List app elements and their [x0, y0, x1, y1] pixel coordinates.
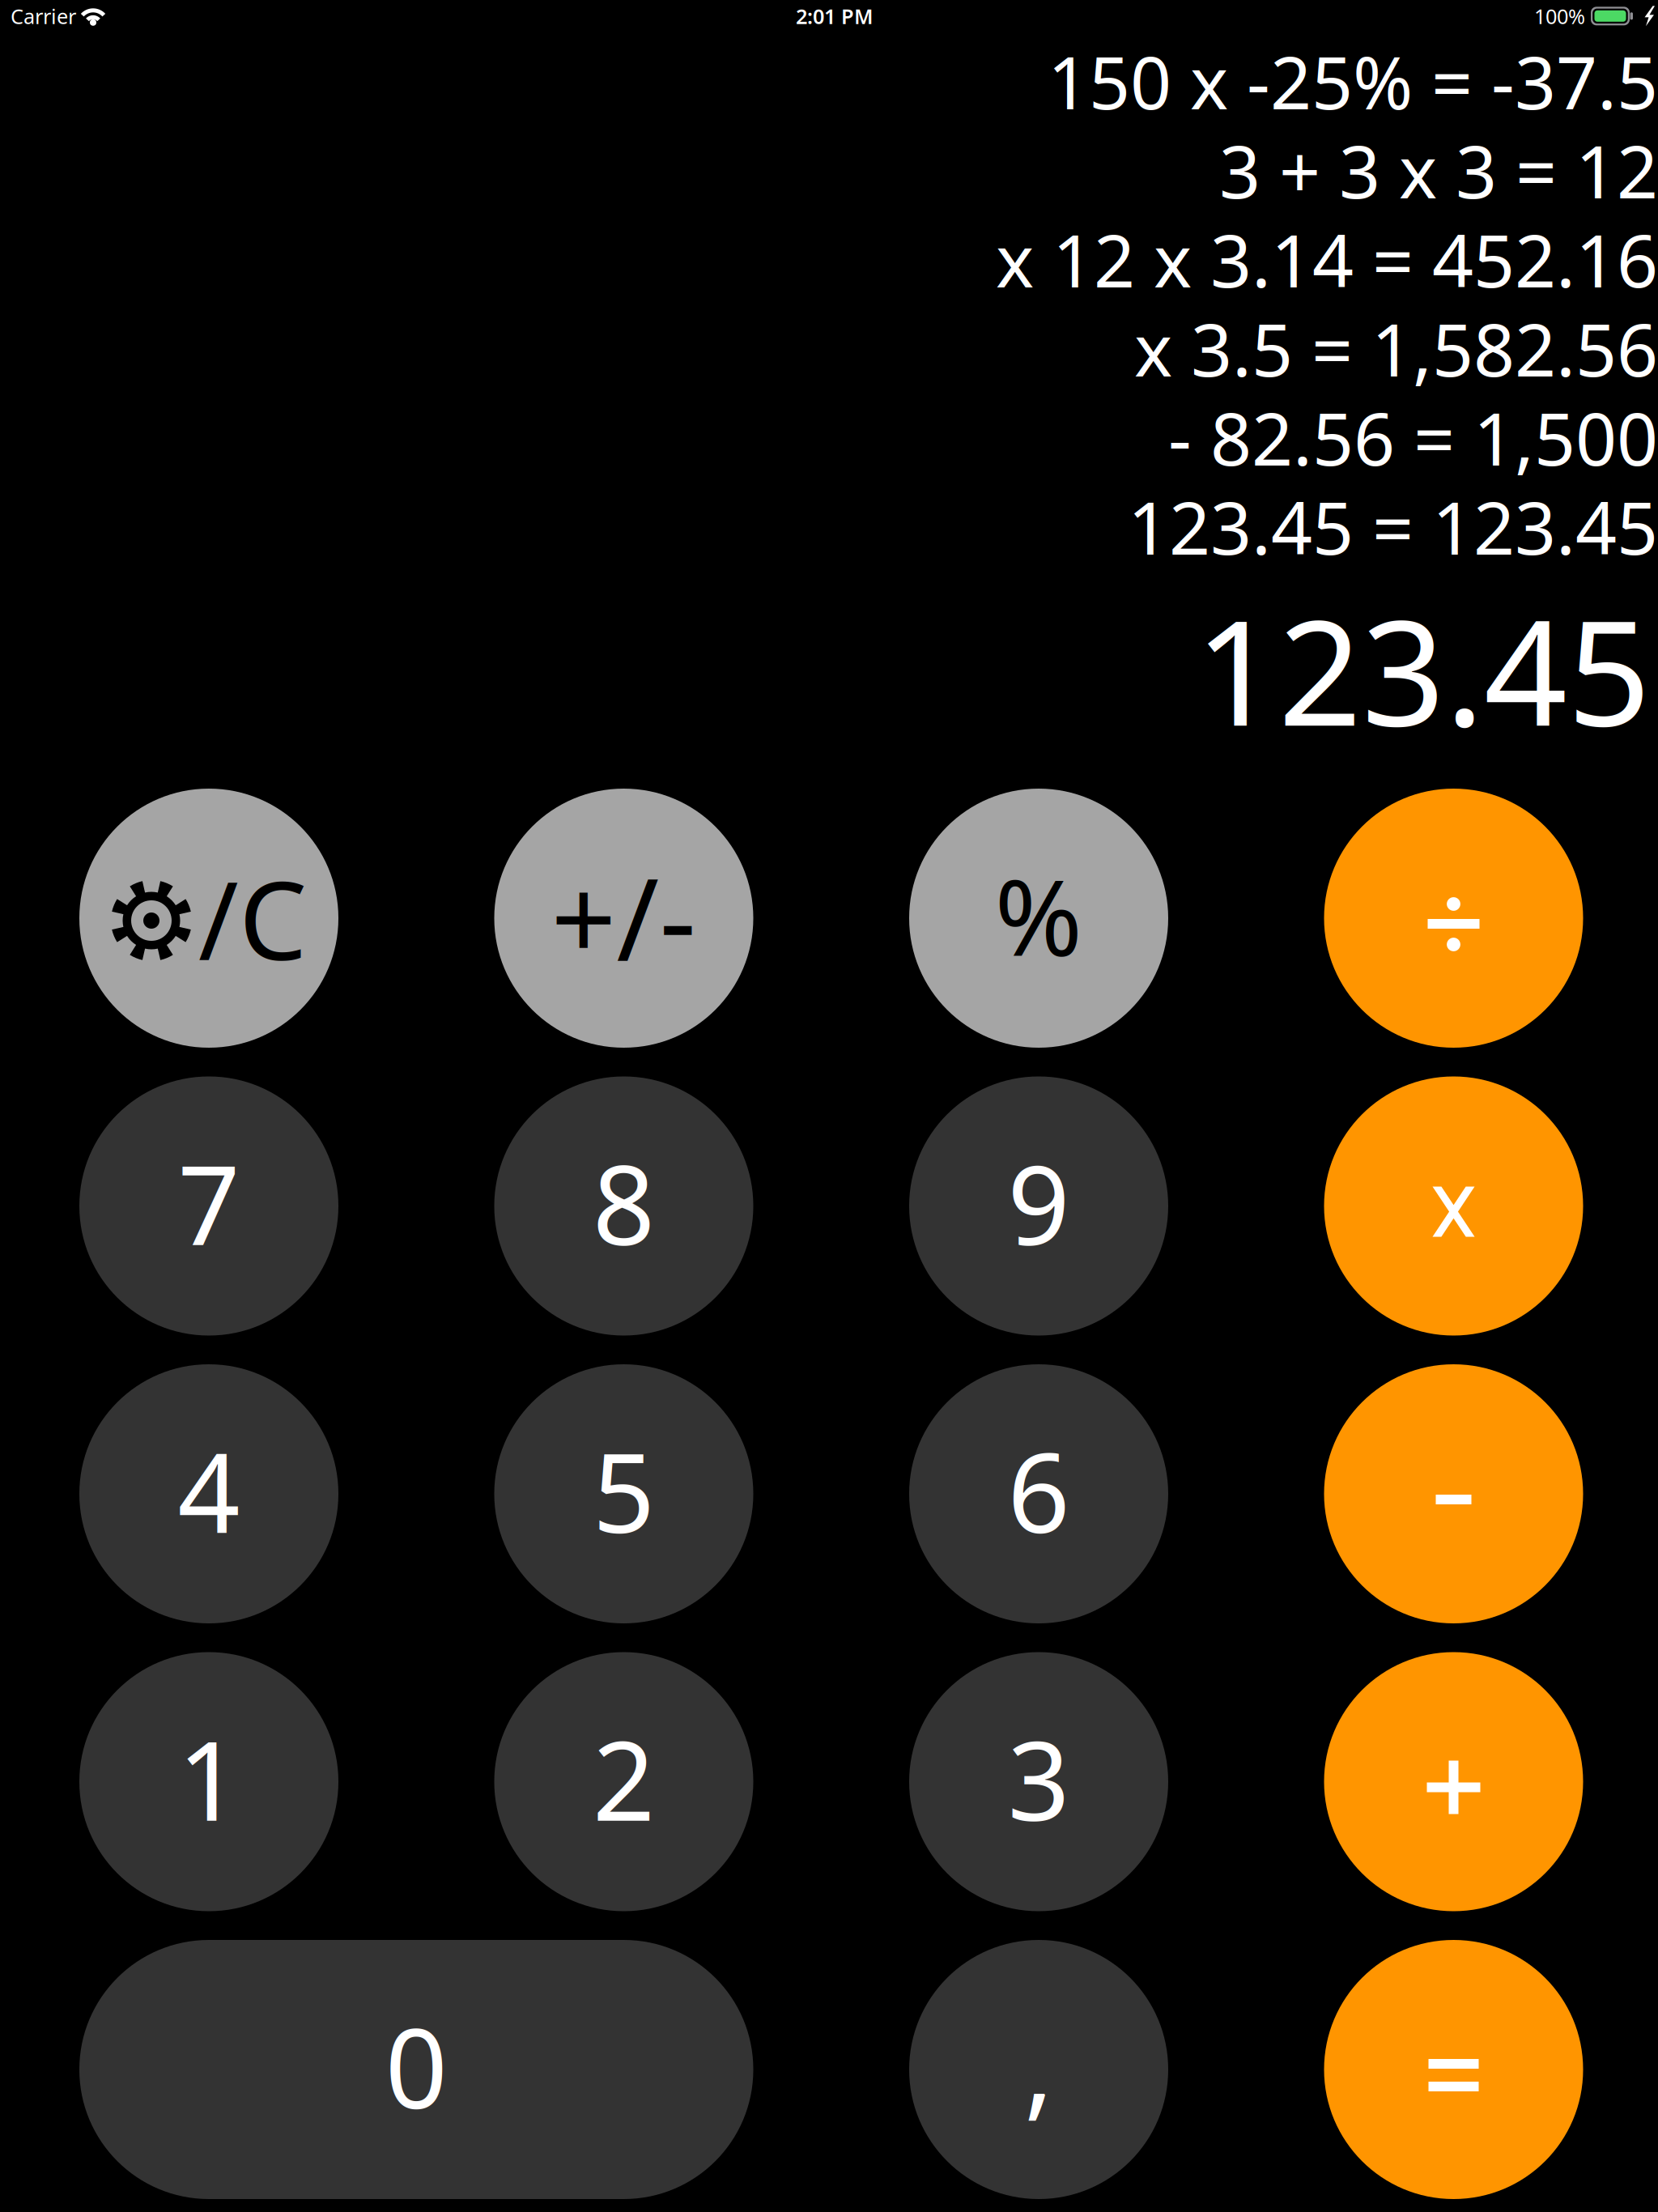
staticText: 123.45 [1195, 572, 1651, 766]
staticText: 2:01 PM [796, 2, 874, 30]
button[interactable]: , [909, 1940, 1168, 2199]
staticText: 9 [1008, 1130, 1070, 1275]
staticText: 7 [178, 1130, 240, 1275]
button[interactable]: 9 [909, 1076, 1168, 1336]
button[interactable]: 7 [79, 1076, 338, 1336]
button[interactable]: 8 [494, 1076, 753, 1336]
staticText: 4 [178, 1418, 240, 1563]
button[interactable]: Add [1324, 1652, 1583, 1911]
staticText: +/- [551, 841, 697, 993]
button[interactable]: Multiply [1324, 1076, 1583, 1336]
staticText: , [1024, 1992, 1053, 2137]
button[interactable]: +/- [494, 789, 753, 1048]
button[interactable]: Divide [1324, 789, 1583, 1048]
staticText: % [995, 845, 1083, 985]
button[interactable]: Subtract [1324, 1364, 1583, 1623]
staticText: 123.45 = 123.45 [1128, 479, 1658, 575]
staticText: 8 [593, 1130, 655, 1275]
staticText: 0 [385, 1994, 448, 2139]
staticText: 3 [1008, 1706, 1070, 1851]
staticText: 2 [593, 1706, 655, 1851]
button[interactable]: 6 [909, 1364, 1168, 1623]
staticText: 100% [1534, 2, 1585, 30]
button[interactable]: Equals [1324, 1940, 1583, 2199]
button[interactable]: 0 [79, 1940, 753, 2199]
staticText: 3 + 3 x 3 = 12 [1219, 122, 1658, 218]
staticText: 5 [593, 1418, 655, 1563]
staticText: x 12 x 3.14 = 452.16 [996, 211, 1658, 307]
staticText: 150 x -25% = -37.5 [1048, 33, 1658, 129]
staticText: Carrier [11, 2, 76, 30]
button[interactable]: 3 [909, 1652, 1168, 1911]
button[interactable]: 2 [494, 1652, 753, 1911]
staticText: /C [198, 847, 307, 990]
staticText: 1 [178, 1706, 240, 1851]
button[interactable]: % [909, 789, 1168, 1048]
button[interactable]: 1 [79, 1652, 338, 1911]
staticText: x 3.5 = 1,582.56 [1134, 300, 1658, 396]
button[interactable]: Settings or Clear [79, 789, 338, 1048]
button[interactable]: 5 [494, 1364, 753, 1623]
button[interactable]: 4 [79, 1364, 338, 1623]
staticText: - 82.56 = 1,500 [1168, 389, 1658, 485]
staticText: 6 [1008, 1418, 1070, 1563]
